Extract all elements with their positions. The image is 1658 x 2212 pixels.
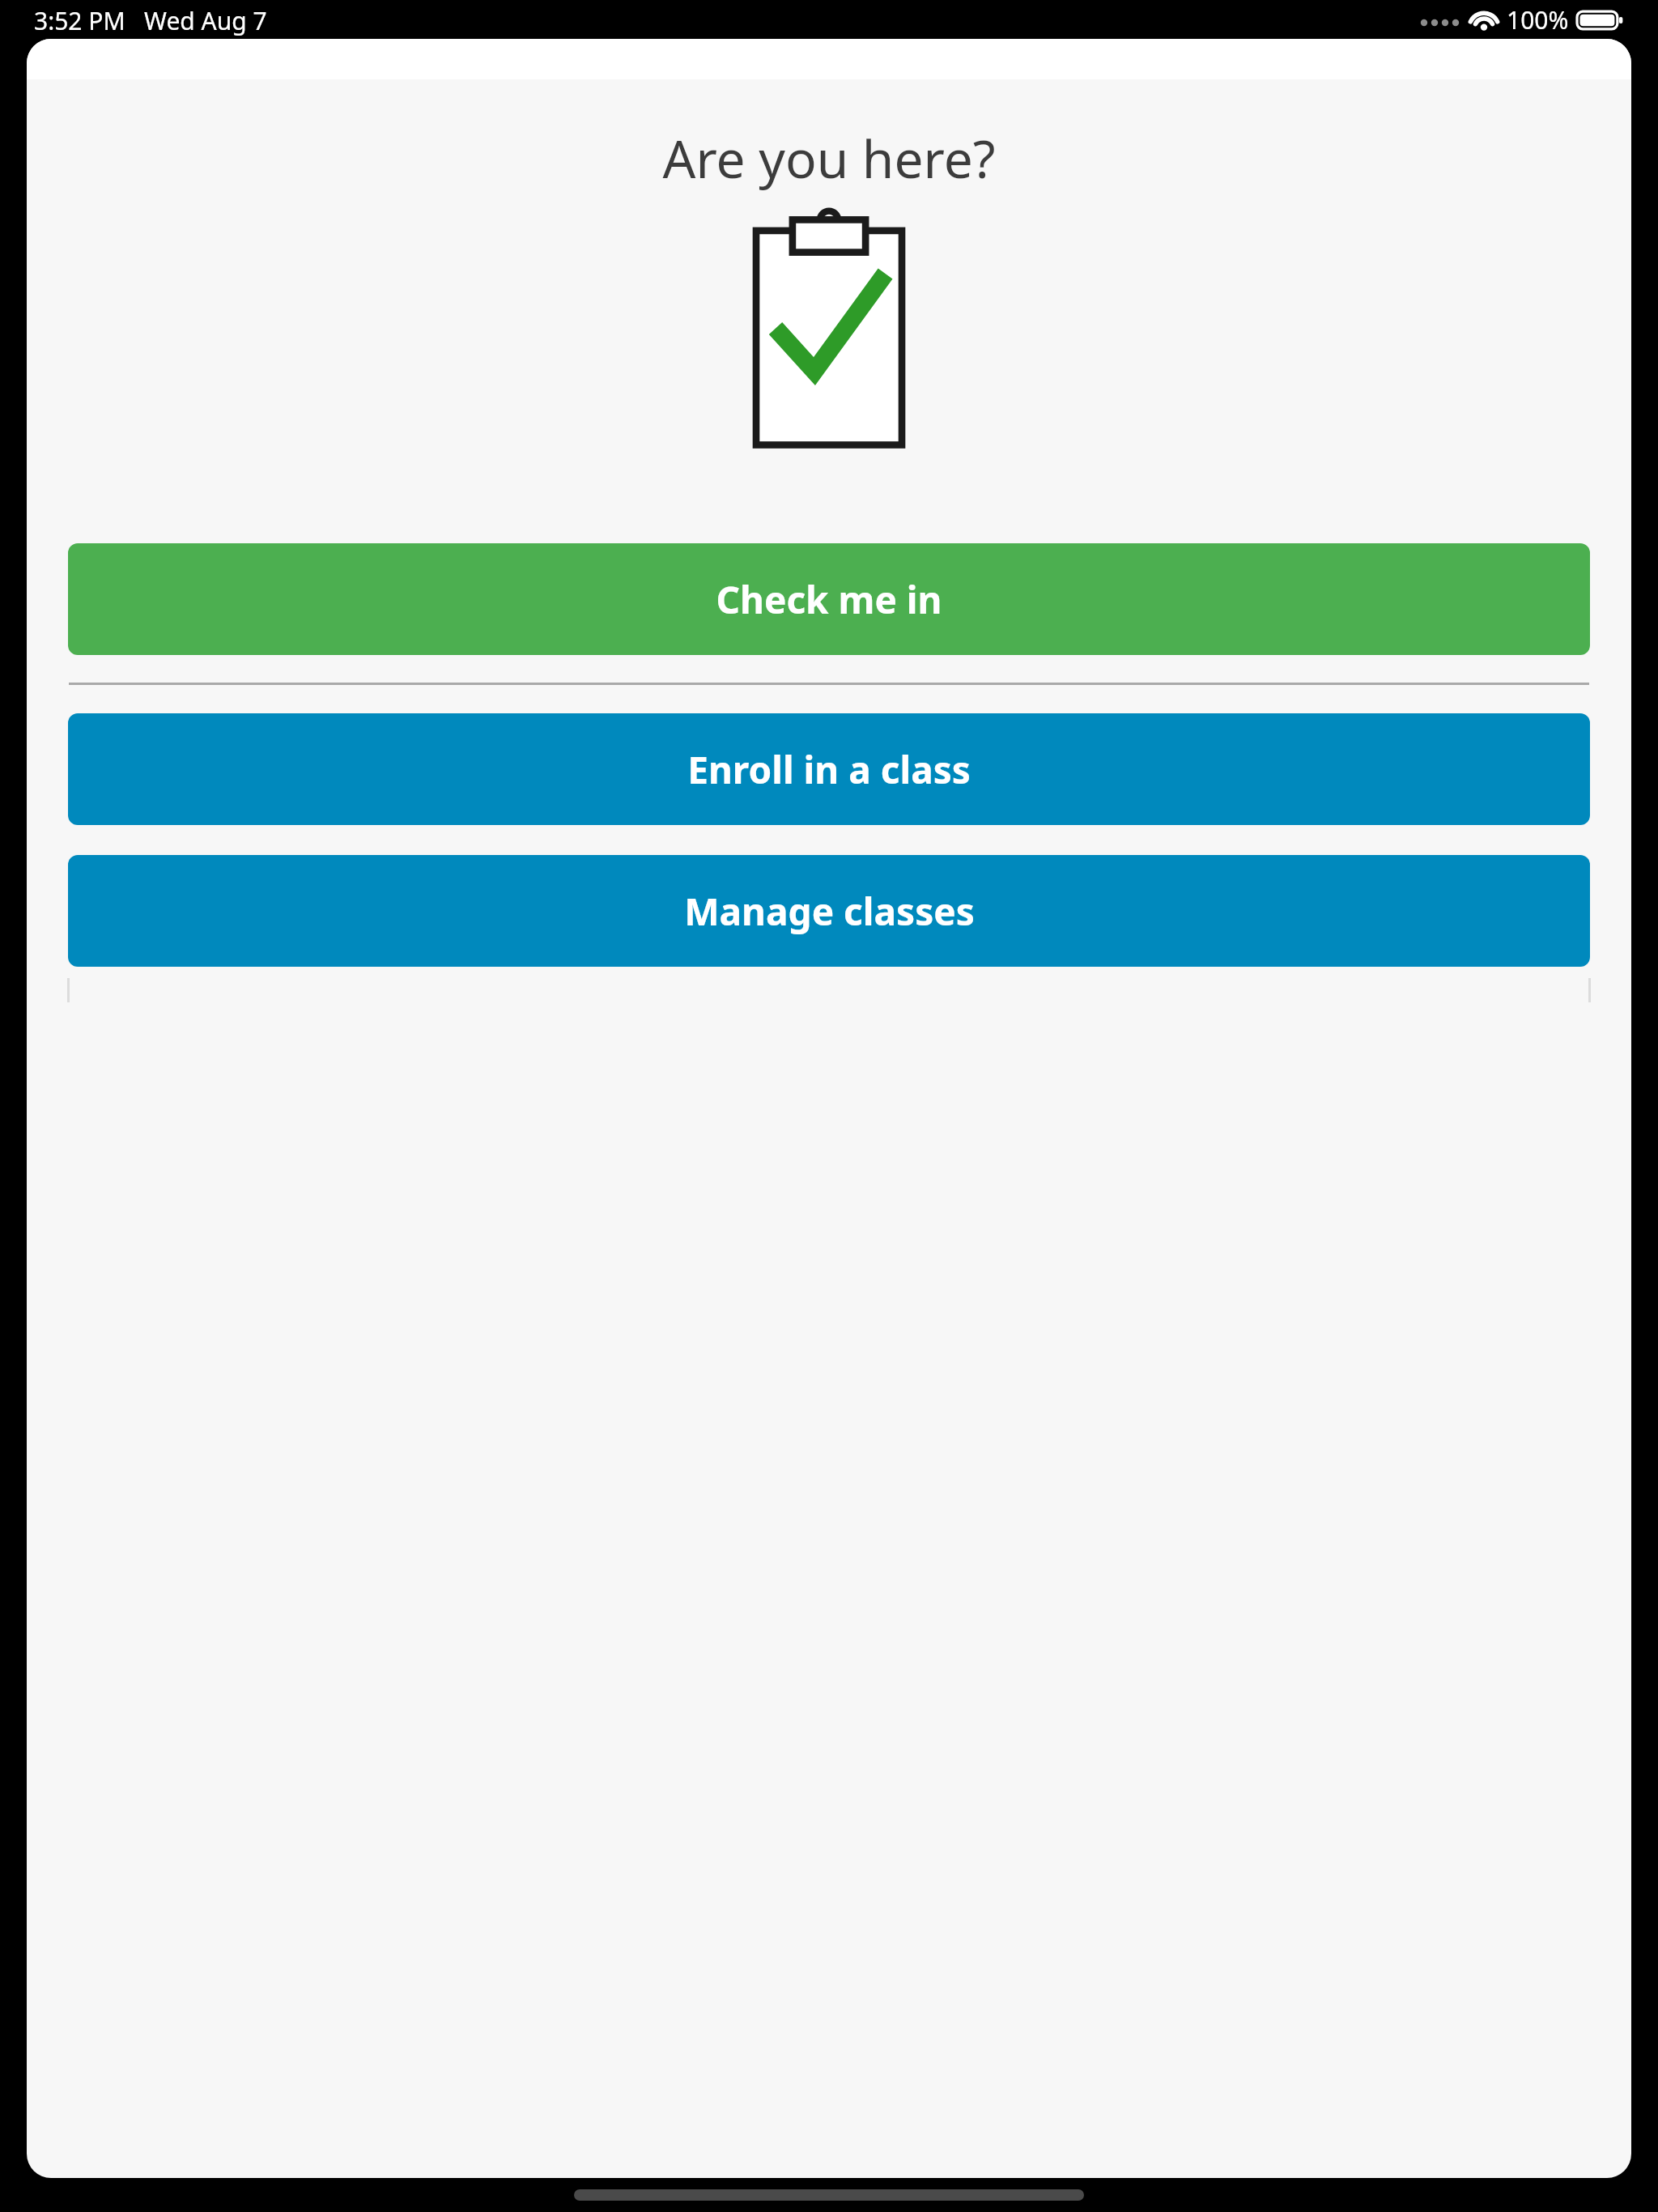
button[interactable]: Check me in (68, 543, 1590, 655)
staticText: Manage classes (684, 886, 975, 937)
staticText: 100% (1507, 3, 1569, 36)
staticText: 3:52 PM Wed Aug 7 (34, 4, 267, 37)
button[interactable]: Manage classes (68, 855, 1590, 967)
other: Attendance checklist (732, 208, 926, 451)
button[interactable]: Enroll in a class (68, 713, 1590, 825)
staticText: Check me in (716, 574, 942, 625)
staticText: Enroll in a class (687, 744, 971, 795)
staticText: Are you here? (662, 123, 996, 194)
